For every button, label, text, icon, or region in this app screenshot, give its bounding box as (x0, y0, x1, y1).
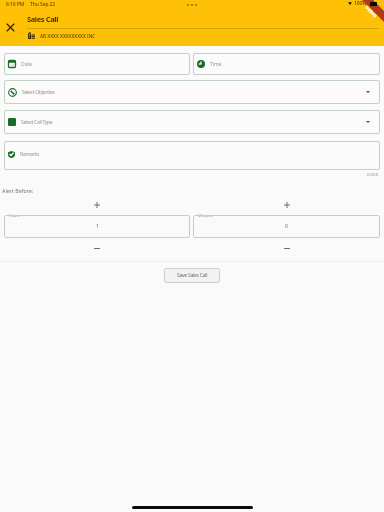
button[interactable]: Decrease Minutes (193, 238, 380, 258)
button[interactable]: Time (193, 53, 380, 75)
staticText: Minutes (198, 213, 213, 218)
button[interactable]: Close (3, 20, 18, 35)
staticText: 0 (285, 223, 288, 230)
button[interactable]: Decrease Hours (4, 238, 190, 258)
button[interactable]: Select Call Type (4, 110, 380, 134)
staticText: Time (210, 61, 222, 68)
button[interactable]: Increase Minutes (193, 195, 380, 215)
button[interactable]: Select Objective (4, 80, 380, 104)
staticText: Select Call Type (21, 119, 53, 126)
staticText: 100% (354, 0, 367, 7)
staticText: Thu Sep 22 (30, 1, 56, 8)
staticText: Hours (9, 213, 20, 218)
button[interactable]: 0 (193, 215, 380, 238)
button[interactable]: Increase Hours (4, 195, 190, 215)
staticText: Remarks (20, 151, 40, 158)
staticText: Save Sales Call (177, 272, 208, 279)
staticText: 0/250 (367, 172, 379, 178)
staticText: Alert Before: (2, 187, 34, 194)
staticText: Select Objective (22, 89, 55, 96)
button[interactable]: Remarks (4, 141, 380, 170)
button[interactable]: 1 (4, 215, 190, 238)
staticText: DEBUG (364, 5, 379, 19)
button[interactable]: Save Sales Call (164, 268, 220, 283)
staticText: 6:10 PM (6, 1, 25, 8)
staticText: AB XXXX XXXXXXXXX INC (40, 33, 96, 39)
button[interactable]: Date (4, 53, 190, 75)
staticText: 1 (96, 223, 99, 230)
staticText: Date (21, 61, 33, 68)
staticText: Sales Call (27, 14, 59, 24)
